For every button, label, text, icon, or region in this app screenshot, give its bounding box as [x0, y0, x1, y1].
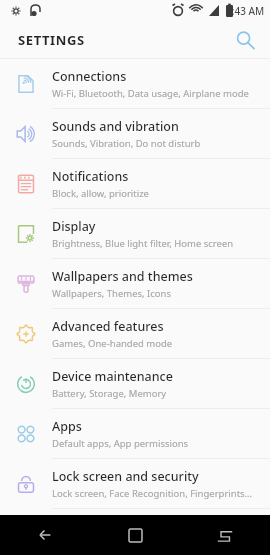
button[interactable]: Home — [90, 515, 180, 555]
button[interactable]: Connections — [0, 59, 270, 108]
button[interactable]: Apps — [0, 409, 270, 458]
staticText: Sounds, Vibration, Do not disturb — [52, 137, 201, 150]
staticText: Wallpapers, Themes, Icons — [52, 287, 172, 300]
button[interactable]: Search — [230, 25, 260, 55]
button[interactable]: Sounds and vibration — [0, 109, 270, 158]
staticText: Connections — [52, 68, 127, 85]
staticText: Wallpapers and themes — [52, 268, 193, 285]
staticText: Lock screen, Face Recognition, Fingerpri… — [52, 487, 253, 500]
button[interactable]: Back — [0, 515, 90, 555]
staticText: Device maintenance — [52, 368, 173, 385]
staticText: Lock screen and security — [52, 468, 199, 485]
staticText: Sounds and vibration — [52, 118, 179, 135]
staticText: Advanced features — [52, 318, 164, 335]
staticText: Default apps, App permissions — [52, 437, 189, 450]
staticText: Block, allow, prioritize — [52, 187, 149, 200]
button[interactable]: Display — [0, 209, 270, 258]
staticText: Brightness, Blue light filter, Home scre… — [52, 237, 234, 250]
button[interactable]: Notifications — [0, 159, 270, 208]
staticText: SETTINGS — [18, 31, 85, 49]
staticText: Battery, Storage, Memory — [52, 387, 167, 400]
staticText: Notifications — [52, 168, 129, 185]
staticText: Games, One-handed mode — [52, 337, 173, 350]
staticText: Apps — [52, 418, 82, 435]
button[interactable]: Advanced features — [0, 309, 270, 358]
button[interactable]: Device maintenance — [0, 359, 270, 408]
button[interactable]: Lock screen and security — [0, 459, 270, 508]
staticText: Display — [52, 218, 96, 235]
staticText: Wi-Fi, Bluetooth, Data usage, Airplane m… — [52, 87, 249, 100]
staticText: 7:43 AM — [226, 4, 265, 18]
button[interactable]: Wallpapers and themes — [0, 259, 270, 308]
button[interactable]: Recent apps — [180, 515, 270, 555]
